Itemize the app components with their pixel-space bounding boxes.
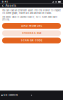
staticText: You can load an Ethereum asset into the … xyxy=(2,9,61,14)
staticText: SCAN QR CODE xyxy=(21,39,42,42)
staticText: The asset data is cached locally, so it … xyxy=(2,16,57,21)
staticText: CHOOSE A FILE xyxy=(22,32,41,35)
staticText: Assets xyxy=(5,4,16,7)
staticText: LOAD FROM URL xyxy=(21,24,42,27)
button[interactable]: CHOOSE A FILE xyxy=(2,30,61,36)
staticText: Not connected xyxy=(3,94,17,96)
button[interactable]: Back xyxy=(1,4,4,7)
button[interactable]: SCAN QR CODE xyxy=(2,38,61,43)
staticText: 9:41 xyxy=(2,0,8,3)
button[interactable]: LOAD FROM URL xyxy=(2,23,61,29)
